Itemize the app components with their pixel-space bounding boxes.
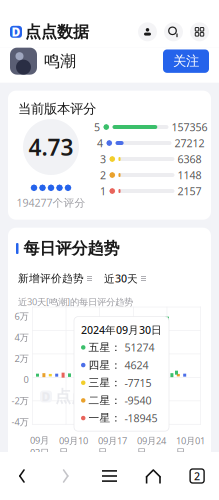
staticText: 四星 xyxy=(135,464,153,475)
staticText: 四星： xyxy=(88,358,121,372)
button[interactable]: Back xyxy=(0,452,44,500)
button[interactable]: Search xyxy=(164,22,183,41)
staticText: -7715 xyxy=(124,376,151,390)
staticText: 6368 xyxy=(177,152,201,166)
staticText: 关注 xyxy=(173,53,199,69)
staticText: 2024年09月30日 xyxy=(81,323,162,337)
button[interactable]: 关注 xyxy=(163,49,209,73)
staticText: 09月17日 xyxy=(98,434,127,458)
staticText: 1 xyxy=(100,184,106,198)
staticText: 当前版本评分 xyxy=(18,101,96,117)
staticText: 2157 xyxy=(177,184,201,198)
staticText: 09月24日 xyxy=(137,434,166,458)
staticText: D xyxy=(11,24,20,40)
staticText: 二星： xyxy=(88,394,121,407)
staticText: 2 xyxy=(100,168,106,182)
staticText: 2万 xyxy=(14,352,28,364)
staticText: 27212 xyxy=(174,136,204,150)
staticText: -9540 xyxy=(124,393,151,407)
staticText: 09月03日 xyxy=(30,434,49,459)
staticText: 194277个评分 xyxy=(16,195,85,210)
button[interactable]: Forward xyxy=(44,452,88,500)
staticText: 6万 xyxy=(14,310,28,322)
staticText: 4万 xyxy=(14,331,28,343)
staticText: 2 xyxy=(194,469,200,483)
staticText: 一星： xyxy=(88,411,121,425)
staticText: 4.73 xyxy=(28,132,73,162)
staticText: D xyxy=(41,388,50,404)
staticText: 每日评分趋势 xyxy=(23,239,119,258)
button[interactable]: Account xyxy=(138,22,157,41)
button[interactable]: Home xyxy=(131,452,175,500)
staticText: 新增评价趋势 xyxy=(18,272,84,285)
staticText: 09月10日 xyxy=(59,434,88,458)
staticText: 鸣潮 xyxy=(44,51,76,71)
staticText: 0 xyxy=(23,373,28,386)
staticText: 3 xyxy=(100,152,106,166)
staticText: 近30天[鸣潮]的每日评分趋势 xyxy=(18,295,133,308)
staticText: 51274 xyxy=(124,340,154,354)
staticText: 157356 xyxy=(171,120,207,134)
staticText: -18945 xyxy=(124,411,157,425)
button[interactable]: 新增评价趋势 xyxy=(18,272,92,285)
staticText: 1148 xyxy=(177,168,201,182)
staticText: 三星 xyxy=(104,464,122,475)
staticText: 五星： xyxy=(88,341,121,354)
staticText: 5 xyxy=(94,120,100,134)
staticText: -4万 xyxy=(11,415,28,428)
button[interactable]: Tabs xyxy=(175,452,219,500)
staticText: 三星： xyxy=(88,376,121,389)
staticText: 10月01日 xyxy=(176,434,205,458)
button[interactable]: 近30天 xyxy=(104,271,146,285)
button[interactable]: Menu xyxy=(190,22,209,41)
staticText: 4 xyxy=(97,136,103,150)
staticText: 4624 xyxy=(124,358,148,372)
staticText: 近30天 xyxy=(104,271,138,285)
button[interactable]: Menu xyxy=(88,452,131,500)
staticText: -2万 xyxy=(11,394,28,407)
staticText: 点点数据 xyxy=(25,22,89,42)
staticText: 点点 xyxy=(55,387,87,406)
